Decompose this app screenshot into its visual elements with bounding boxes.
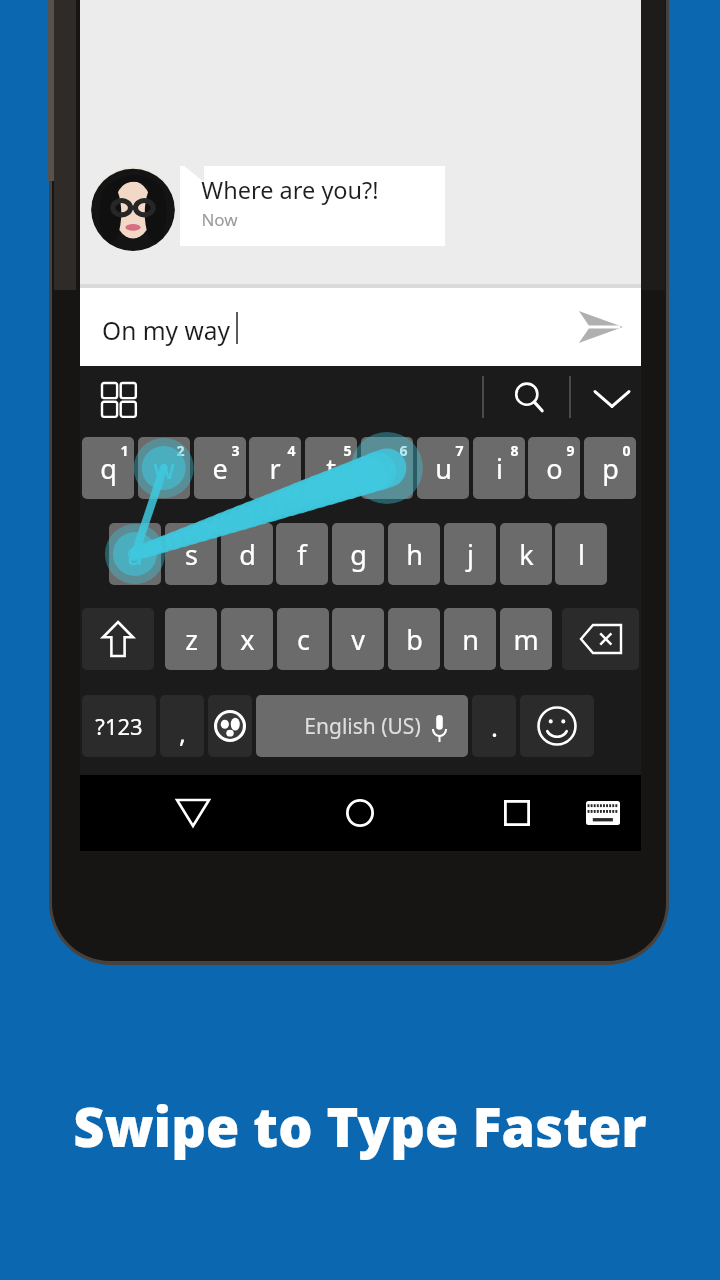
button[interactable]: Send [572, 299, 628, 355]
staticText: n [462, 621, 479, 658]
staticText: y [380, 450, 394, 487]
button[interactable]: k [500, 523, 552, 585]
button[interactable]: e [194, 437, 246, 499]
staticText: 2 [176, 441, 185, 460]
staticText: , [179, 715, 186, 750]
button[interactable]: p [584, 437, 636, 499]
staticText: g [350, 536, 367, 573]
staticText: c [297, 621, 310, 658]
button[interactable]: n [444, 608, 496, 670]
staticText: English (US) [304, 712, 421, 741]
staticText: 4 [287, 441, 296, 460]
button[interactable]: u [417, 437, 469, 499]
staticText: x [240, 621, 255, 658]
staticText: v [351, 621, 365, 658]
button[interactable]: f [276, 523, 328, 585]
staticText: s [185, 536, 198, 573]
button[interactable]: English (US) [256, 695, 468, 757]
staticText: f [297, 536, 307, 573]
button[interactable]: d [221, 523, 273, 585]
staticText: l [578, 536, 585, 573]
staticText: h [406, 536, 423, 573]
button[interactable]: Emoji [520, 695, 594, 757]
button[interactable]: z [165, 608, 217, 670]
staticText: On my way [102, 314, 230, 347]
staticText: t [326, 450, 336, 487]
staticText: e [212, 450, 228, 487]
button[interactable]: h [388, 523, 440, 585]
button[interactable]: Switch keyboard [578, 793, 628, 833]
staticText: 6 [399, 441, 408, 460]
staticText: . [491, 709, 498, 744]
button[interactable]: l [555, 523, 607, 585]
staticText: 9 [566, 441, 575, 460]
button[interactable]: i [473, 437, 525, 499]
staticText: 7 [455, 441, 464, 460]
button[interactable]: Comma [160, 695, 204, 757]
staticText: k [519, 536, 534, 573]
button[interactable]: Keyboard modes [102, 383, 138, 419]
button[interactable]: On my way [80, 288, 641, 366]
button[interactable]: Change language [208, 695, 252, 757]
button[interactable]: r [249, 437, 301, 499]
staticText: 3 [231, 441, 240, 460]
staticText: ?123 [95, 711, 143, 741]
staticText: r [269, 450, 281, 487]
staticText: j [467, 536, 474, 573]
button[interactable]: s [165, 523, 217, 585]
button[interactable]: Back [165, 793, 221, 833]
button[interactable]: Home [332, 793, 388, 833]
staticText: u [435, 450, 452, 487]
button[interactable]: a [109, 523, 161, 585]
button[interactable]: Recents [489, 793, 545, 833]
staticText: 0 [622, 441, 631, 460]
staticText: a [127, 536, 143, 573]
button[interactable]: t [305, 437, 357, 499]
button[interactable]: c [277, 608, 329, 670]
button[interactable]: Shift [82, 608, 154, 670]
staticText: 5 [343, 441, 352, 460]
button[interactable]: Where are you?! [180, 166, 445, 246]
staticText: w [153, 450, 175, 487]
staticText: 8 [510, 441, 519, 460]
button[interactable]: Period [472, 695, 516, 757]
staticText: Swipe to Type Faster [73, 1089, 647, 1163]
button[interactable]: w [138, 437, 190, 499]
staticText: z [185, 621, 198, 658]
button[interactable]: Hide keyboard [583, 374, 641, 422]
button[interactable]: o [528, 437, 580, 499]
button[interactable]: b [388, 608, 440, 670]
staticText: b [406, 621, 423, 658]
staticText: d [239, 536, 256, 573]
button[interactable]: y [361, 437, 413, 499]
button[interactable]: Symbols [82, 695, 156, 757]
staticText: i [496, 450, 503, 487]
staticText: p [602, 450, 619, 487]
staticText: m [513, 621, 539, 658]
staticText: q [100, 450, 117, 487]
button[interactable]: j [444, 523, 496, 585]
button[interactable]: m [500, 608, 552, 670]
staticText: Where are you?! [201, 174, 379, 206]
staticText: 1 [120, 441, 129, 460]
button[interactable]: Search [498, 374, 562, 422]
button[interactable]: g [332, 523, 384, 585]
button[interactable]: Backspace [562, 608, 639, 670]
button[interactable]: q [82, 437, 134, 499]
staticText: Now [201, 208, 238, 231]
button[interactable]: x [221, 608, 273, 670]
staticText: o [546, 450, 563, 487]
button[interactable]: v [332, 608, 384, 670]
